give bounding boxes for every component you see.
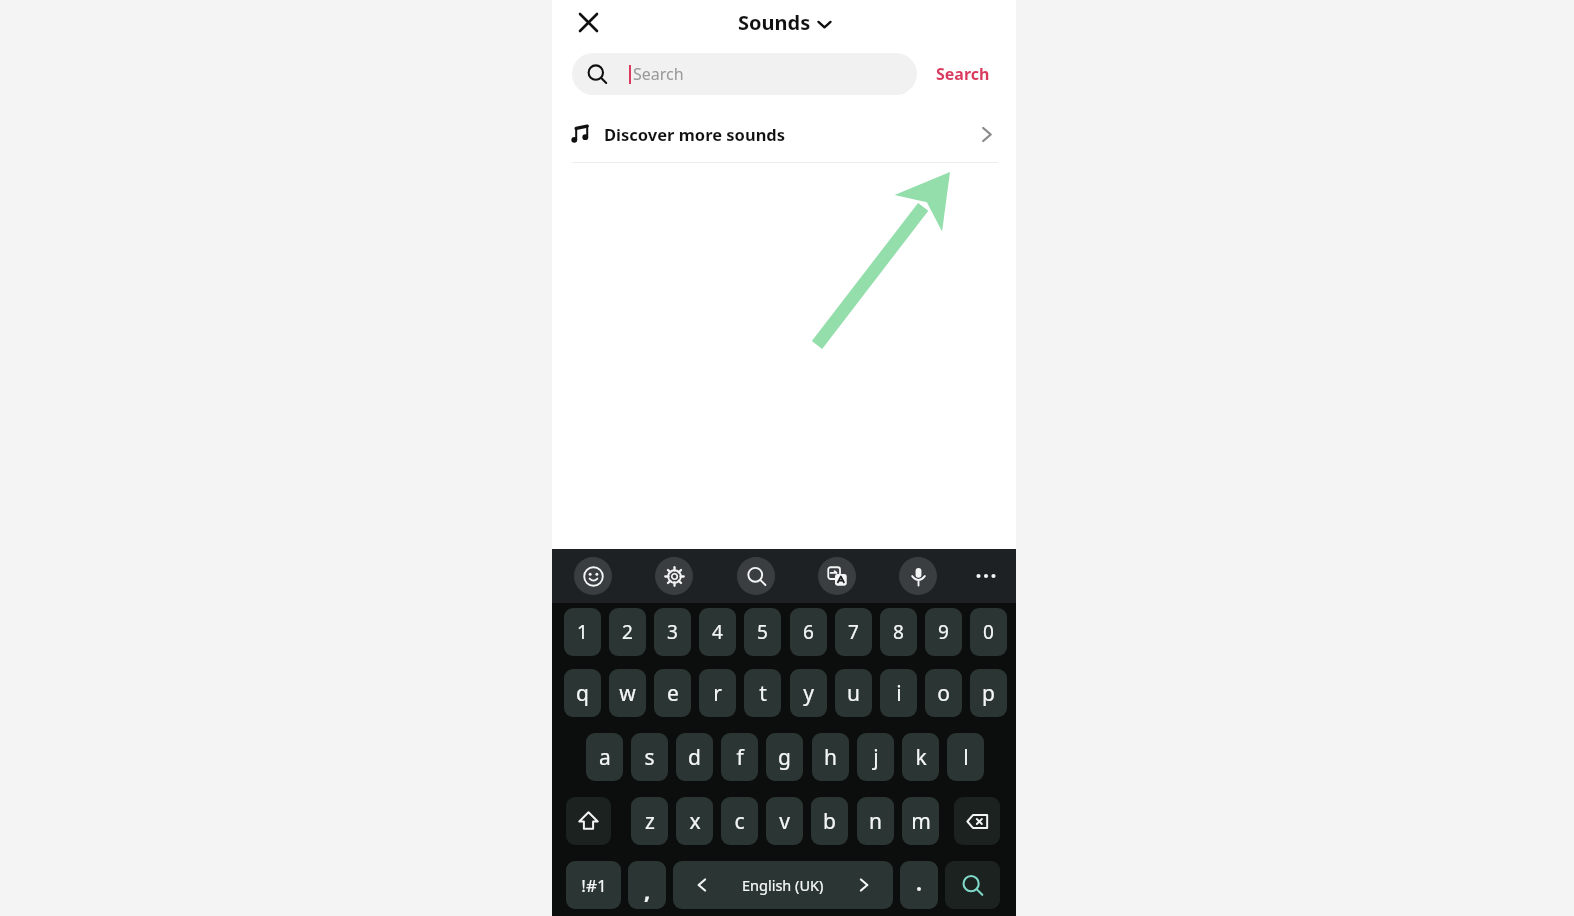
staticText: f (736, 743, 744, 772)
button[interactable]: r (699, 669, 736, 717)
button[interactable]: p (970, 669, 1007, 717)
staticText: v (779, 807, 790, 836)
button[interactable]: 3 (654, 608, 691, 656)
staticText: j (873, 743, 879, 772)
staticText: c (734, 807, 745, 836)
button[interactable]: 6 (790, 608, 827, 656)
button[interactable]: More options (967, 557, 1005, 595)
button[interactable]: Shift (566, 797, 611, 845)
button[interactable]: c (721, 797, 758, 845)
staticText: n (869, 807, 882, 836)
staticText: q (576, 679, 589, 708)
button[interactable]: Backspace (954, 797, 1000, 845)
button[interactable]: Translate (818, 557, 856, 595)
button[interactable]: v (766, 797, 803, 845)
staticText: !#1 (581, 874, 607, 897)
staticText: b (823, 807, 836, 836)
staticText: o (937, 679, 950, 708)
staticText: 2 (622, 619, 633, 645)
button[interactable]: g (766, 733, 803, 781)
button[interactable]: u (835, 669, 872, 717)
staticText: e (667, 679, 679, 708)
button[interactable]: z (631, 797, 668, 845)
staticText: p (982, 679, 995, 708)
button[interactable]: s (631, 733, 668, 781)
button[interactable]: 4 (699, 608, 736, 656)
staticText: 9 (938, 619, 949, 645)
staticText: x (689, 807, 701, 836)
button[interactable]: Search (572, 53, 917, 95)
button[interactable]: j (857, 733, 894, 781)
staticText: Search (936, 63, 990, 85)
button[interactable]: t (744, 669, 781, 717)
button[interactable]: y (790, 669, 827, 717)
button[interactable]: e (654, 669, 691, 717)
staticText: 3 (667, 619, 678, 645)
button[interactable]: Emoji (574, 557, 612, 595)
staticText: g (778, 743, 791, 772)
button[interactable]: Voice input (899, 557, 937, 595)
button[interactable]: o (925, 669, 962, 717)
button[interactable]: Search (924, 53, 1002, 95)
staticText: 6 (803, 619, 814, 645)
button[interactable]: Close (570, 4, 606, 40)
button[interactable]: b (811, 797, 848, 845)
staticText: d (688, 743, 701, 772)
staticText: u (847, 679, 860, 708)
staticText: 1 (577, 619, 588, 645)
button[interactable]: l (947, 733, 984, 781)
staticText: z (645, 807, 655, 836)
staticText: i (896, 679, 902, 708)
button[interactable]: d (676, 733, 713, 781)
button[interactable]: Period (900, 861, 938, 909)
staticText: 8 (893, 619, 904, 645)
staticText: , (644, 875, 651, 905)
staticText: t (759, 679, 767, 708)
button[interactable]: a (586, 733, 623, 781)
button[interactable]: k (902, 733, 939, 781)
button[interactable]: 0 (970, 608, 1007, 656)
staticText: 5 (757, 619, 768, 645)
staticText: 0 (983, 619, 994, 645)
button[interactable]: Sounds (712, 2, 856, 42)
staticText: 4 (712, 619, 723, 645)
staticText: y (803, 679, 814, 708)
button[interactable]: q (564, 669, 601, 717)
staticText: s (644, 743, 655, 772)
button[interactable]: Comma (628, 861, 666, 909)
button[interactable]: Settings (655, 557, 693, 595)
button[interactable]: !#1 (566, 861, 621, 909)
staticText: w (619, 679, 636, 708)
staticText: m (911, 807, 931, 836)
button[interactable]: English (UK) (673, 861, 893, 909)
button[interactable]: n (857, 797, 894, 845)
staticText: k (915, 743, 927, 772)
button[interactable]: 9 (925, 608, 962, 656)
button[interactable]: 1 (564, 608, 601, 656)
staticText: Discover more sounds (604, 123, 786, 145)
button[interactable]: 8 (880, 608, 917, 656)
button[interactable]: i (880, 669, 917, 717)
staticText: English (UK) (742, 875, 824, 895)
staticText: h (824, 743, 837, 772)
button[interactable]: h (812, 733, 849, 781)
button[interactable]: 7 (835, 608, 872, 656)
button[interactable]: w (609, 669, 646, 717)
button[interactable]: 2 (609, 608, 646, 656)
staticText: l (963, 743, 969, 772)
button[interactable]: Search (737, 557, 775, 595)
button[interactable]: m (902, 797, 939, 845)
button[interactable]: x (676, 797, 713, 845)
button[interactable]: Search (945, 861, 1000, 909)
staticText: Search (633, 63, 684, 85)
staticText: a (599, 743, 611, 772)
button[interactable]: f (721, 733, 758, 781)
button[interactable]: 5 (744, 608, 781, 656)
button[interactable]: Discover more sounds (552, 110, 1016, 158)
staticText: 7 (848, 619, 859, 645)
staticText: r (713, 679, 722, 708)
staticText: Sounds (738, 9, 811, 36)
